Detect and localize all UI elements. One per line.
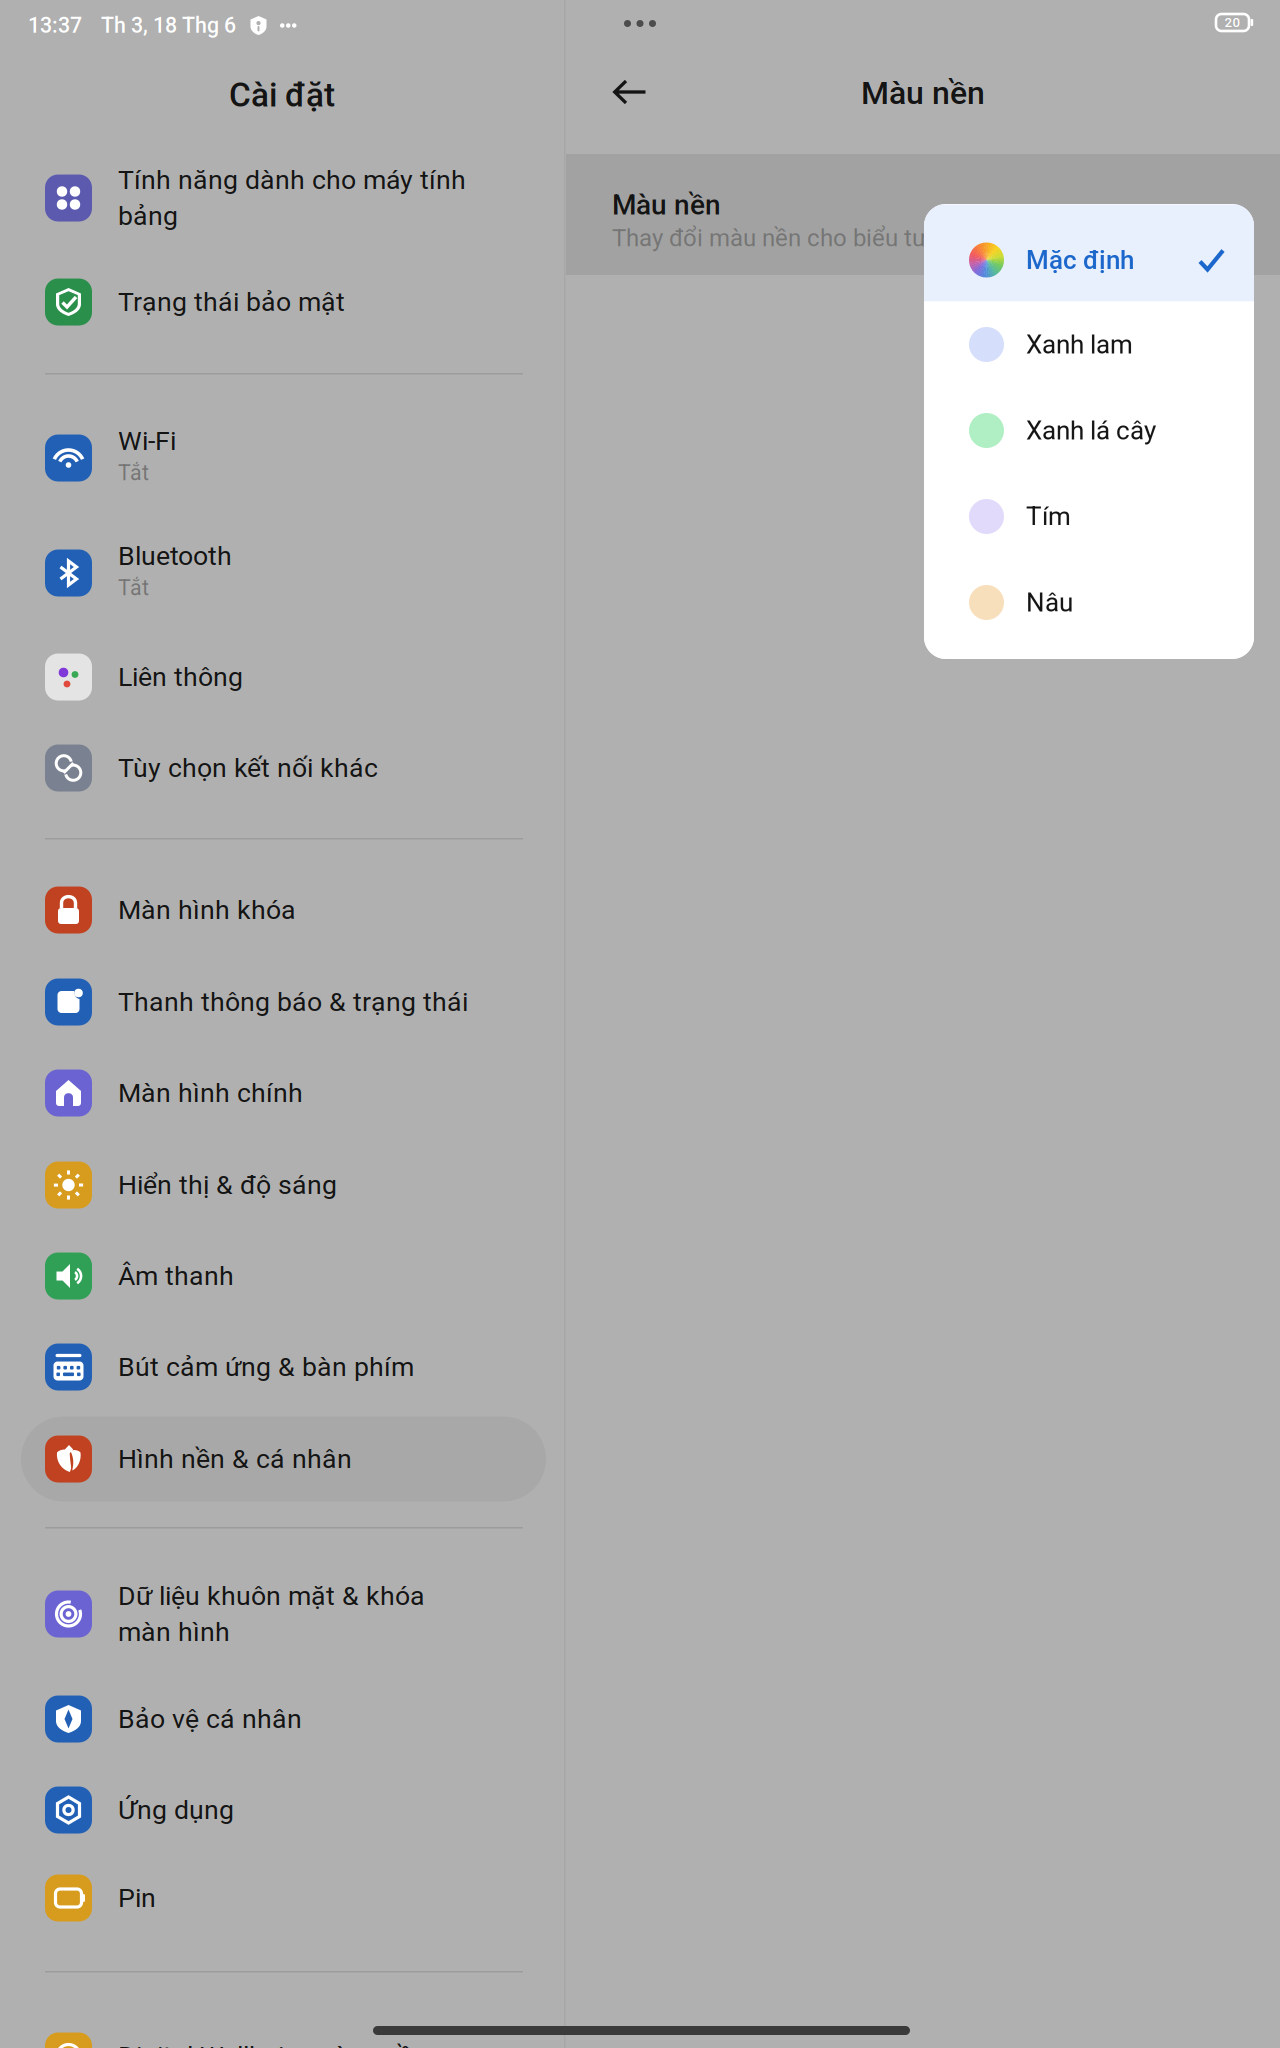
button[interactable]: Màn hình chính	[0, 0, 564, 2048]
button[interactable]: Back	[586, 49, 674, 135]
button[interactable]: Nâu	[924, 559, 1254, 645]
button[interactable]: Bút cảm ứng & bàn phím	[0, 0, 564, 2048]
button[interactable]: Hiển thị & độ sáng	[0, 0, 564, 2048]
button[interactable]: Xanh lam	[924, 301, 1254, 387]
staticText: Xanh lam	[1026, 329, 1133, 360]
staticText: Màn hình khóa	[118, 894, 296, 926]
staticText: Màu nền	[612, 189, 721, 221]
button[interactable]: Bluetooth	[0, 0, 564, 2048]
button[interactable]: Tím	[924, 473, 1254, 559]
staticText: Hiển thị & độ sáng	[118, 1169, 337, 1201]
staticText: Trạng thái bảo mật	[118, 286, 345, 318]
staticText: Xanh lá cây	[1026, 415, 1156, 446]
button[interactable]: Âm thanh	[0, 0, 564, 2048]
staticText: Màu nền	[861, 74, 985, 112]
staticText: màn hình	[118, 1616, 230, 1648]
button[interactable]: Digital Wellbeing và quyền	[0, 0, 564, 2048]
staticText: 13:37	[28, 13, 82, 38]
button[interactable]: Pin	[0, 0, 564, 2048]
staticText: Màn hình chính	[118, 1077, 303, 1109]
button[interactable]: Hình nền & cá nhân	[0, 0, 564, 2048]
staticText: Tắt	[118, 460, 149, 485]
button[interactable]: Thanh thông báo & trạng thái	[0, 0, 564, 2048]
staticText: Bút cảm ứng & bàn phím	[118, 1351, 414, 1383]
staticText: Bảo vệ cá nhân	[118, 1703, 302, 1735]
staticText: Dữ liệu khuôn mặt & khóa	[118, 1580, 425, 1612]
button[interactable]: Tùy chọn kết nối khác	[0, 0, 564, 2048]
staticText: Th 3, 18 Thg 6	[101, 13, 236, 38]
staticText: 20	[1224, 15, 1240, 30]
staticText: Liên thông	[118, 661, 243, 693]
staticText: Bluetooth	[118, 540, 232, 572]
staticText: Tính năng dành cho máy tính	[118, 164, 466, 196]
staticText: Digital Wellbeing và quyền	[118, 2040, 427, 2048]
staticText: Mặc định	[1026, 245, 1134, 275]
staticText: Âm thanh	[118, 1260, 234, 1292]
button[interactable]: Mặc định	[924, 204, 1254, 301]
staticText: Ứng dụng	[118, 1794, 234, 1826]
staticText: Thanh thông báo & trạng thái	[118, 986, 468, 1018]
staticText: Tắt	[118, 575, 149, 600]
staticText: Pin	[118, 1882, 156, 1914]
staticText: Tím	[1026, 501, 1071, 532]
staticText: Cài đặt	[229, 75, 335, 115]
button[interactable]: Bảo vệ cá nhân	[0, 0, 564, 2048]
staticText: Hình nền & cá nhân	[118, 1443, 352, 1475]
staticText: Thay đổi màu nền cho biểu tượng	[612, 224, 967, 252]
staticText: Wi-Fi	[118, 425, 176, 457]
staticText: Tùy chọn kết nối khác	[118, 752, 378, 784]
button[interactable]: Dữ liệu khuôn mặt & khóa	[0, 0, 564, 2048]
staticText: Nâu	[1026, 587, 1073, 618]
staticText: bảng	[118, 200, 178, 232]
button[interactable]: Ứng dụng	[0, 0, 564, 2048]
button[interactable]: Màn hình khóa	[0, 0, 564, 2048]
button[interactable]: Tính năng dành cho máy tính	[0, 0, 564, 2048]
button[interactable]: Xanh lá cây	[924, 387, 1254, 473]
button[interactable]: Wi-Fi	[0, 0, 564, 2048]
button[interactable]: Màu nền	[566, 154, 1280, 275]
button[interactable]: Trạng thái bảo mật	[0, 0, 564, 2048]
button[interactable]: Liên thông	[0, 0, 564, 2048]
